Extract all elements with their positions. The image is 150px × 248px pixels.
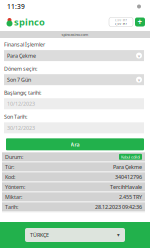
staticText: spinco — [14, 16, 45, 28]
staticText: Yöntem: — [5, 183, 25, 190]
staticText: Kod: — [5, 173, 15, 180]
staticText: Durum: — [5, 153, 23, 160]
staticText: Son Tarih: — [4, 113, 27, 120]
staticText: TercihHavale — [110, 183, 142, 190]
staticText: v — [138, 53, 140, 58]
staticText: Başlangıç tarihi: — [4, 89, 41, 96]
staticText: Tarih: — [5, 203, 18, 210]
button[interactable]: Para Çekme — [4, 50, 144, 61]
staticText: spincasino.com — [61, 32, 88, 37]
button[interactable]: Son 7 Gün — [4, 74, 144, 85]
staticText: 10/12/2023 — [7, 100, 35, 107]
staticText: Kabul edildi — [121, 154, 140, 159]
staticText: + — [137, 17, 142, 27]
staticText: Para Çekme — [7, 52, 36, 59]
staticText: Dönem seçin: — [4, 65, 37, 72]
button[interactable]: 0,00 TRY — [109, 17, 133, 26]
staticText: Finansal İşlemler — [4, 41, 45, 48]
button[interactable]: 10/12/2023 — [4, 98, 144, 109]
staticText: v — [138, 77, 140, 82]
button[interactable]: TÜRKÇE — [25, 228, 125, 242]
staticText: 28.12.2023 09:42:36 — [95, 203, 142, 210]
staticText: Miktar: — [5, 193, 22, 200]
staticText: Para Çekme — [113, 163, 142, 170]
staticText: 0,00 TRY — [114, 22, 127, 25]
staticText: 30/12/2023 — [7, 124, 35, 131]
staticText: 2.455 TRY — [119, 193, 142, 200]
staticText: Tür: — [5, 163, 14, 170]
staticText: 340412796 — [115, 173, 142, 180]
staticText: 11:39 — [7, 2, 25, 11]
staticText: 0,00 TRY — [114, 18, 127, 22]
button[interactable]: Deposit — [135, 17, 145, 26]
button[interactable]: Ara — [6, 138, 144, 150]
staticText: Son 7 Gün — [7, 76, 31, 83]
staticText: ▾ — [117, 232, 120, 238]
staticText: Ara — [70, 141, 79, 148]
button[interactable]: 30/12/2023 — [4, 122, 144, 133]
staticText: TÜRKÇE — [30, 231, 49, 239]
